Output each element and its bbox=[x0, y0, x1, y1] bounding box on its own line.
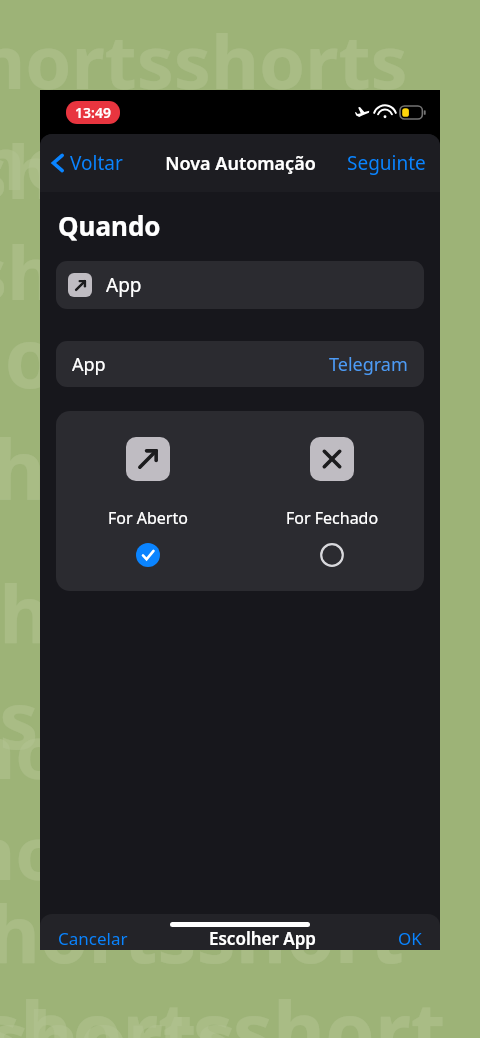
staticText: Telegram bbox=[329, 352, 408, 377]
staticText: shortsshortsshorts bbox=[0, 120, 450, 322]
button[interactable]: Seguinte bbox=[333, 142, 440, 184]
staticText: shortsshortsshorts bbox=[0, 560, 440, 772]
staticText: Quando bbox=[58, 208, 161, 243]
staticText: shortsshortsshorts bbox=[0, 700, 410, 902]
staticText: Voltar bbox=[70, 150, 123, 176]
button[interactable]: Voltar bbox=[40, 144, 133, 182]
other: Wi-Fi bbox=[377, 104, 393, 120]
staticText: App bbox=[106, 272, 142, 298]
button[interactable]: For Fechado bbox=[240, 411, 424, 591]
staticText: OK bbox=[398, 927, 422, 950]
staticText: Escolher App bbox=[209, 927, 316, 950]
other: Airplane mode bbox=[355, 105, 370, 120]
staticText: shortsshortsshorts bbox=[0, 880, 430, 1038]
staticText: Cancelar bbox=[58, 927, 128, 950]
staticText: For Fechado bbox=[286, 507, 379, 529]
button[interactable]: App bbox=[56, 261, 424, 309]
other: Battery low bbox=[400, 106, 426, 119]
staticText: App bbox=[72, 352, 106, 377]
staticText: shortsshortsshorts bbox=[0, 10, 420, 212]
staticText: shortsshortsshorts bbox=[0, 975, 460, 1038]
button[interactable]: For Aberto bbox=[56, 411, 240, 591]
staticText: For Aberto bbox=[108, 507, 188, 529]
staticText: 13:49 bbox=[75, 103, 111, 122]
staticText: Seguinte bbox=[347, 150, 426, 176]
button[interactable]: App bbox=[56, 341, 424, 387]
staticText: shortsshortsshorts bbox=[0, 300, 390, 524]
staticText: Nova Automação bbox=[165, 151, 316, 176]
